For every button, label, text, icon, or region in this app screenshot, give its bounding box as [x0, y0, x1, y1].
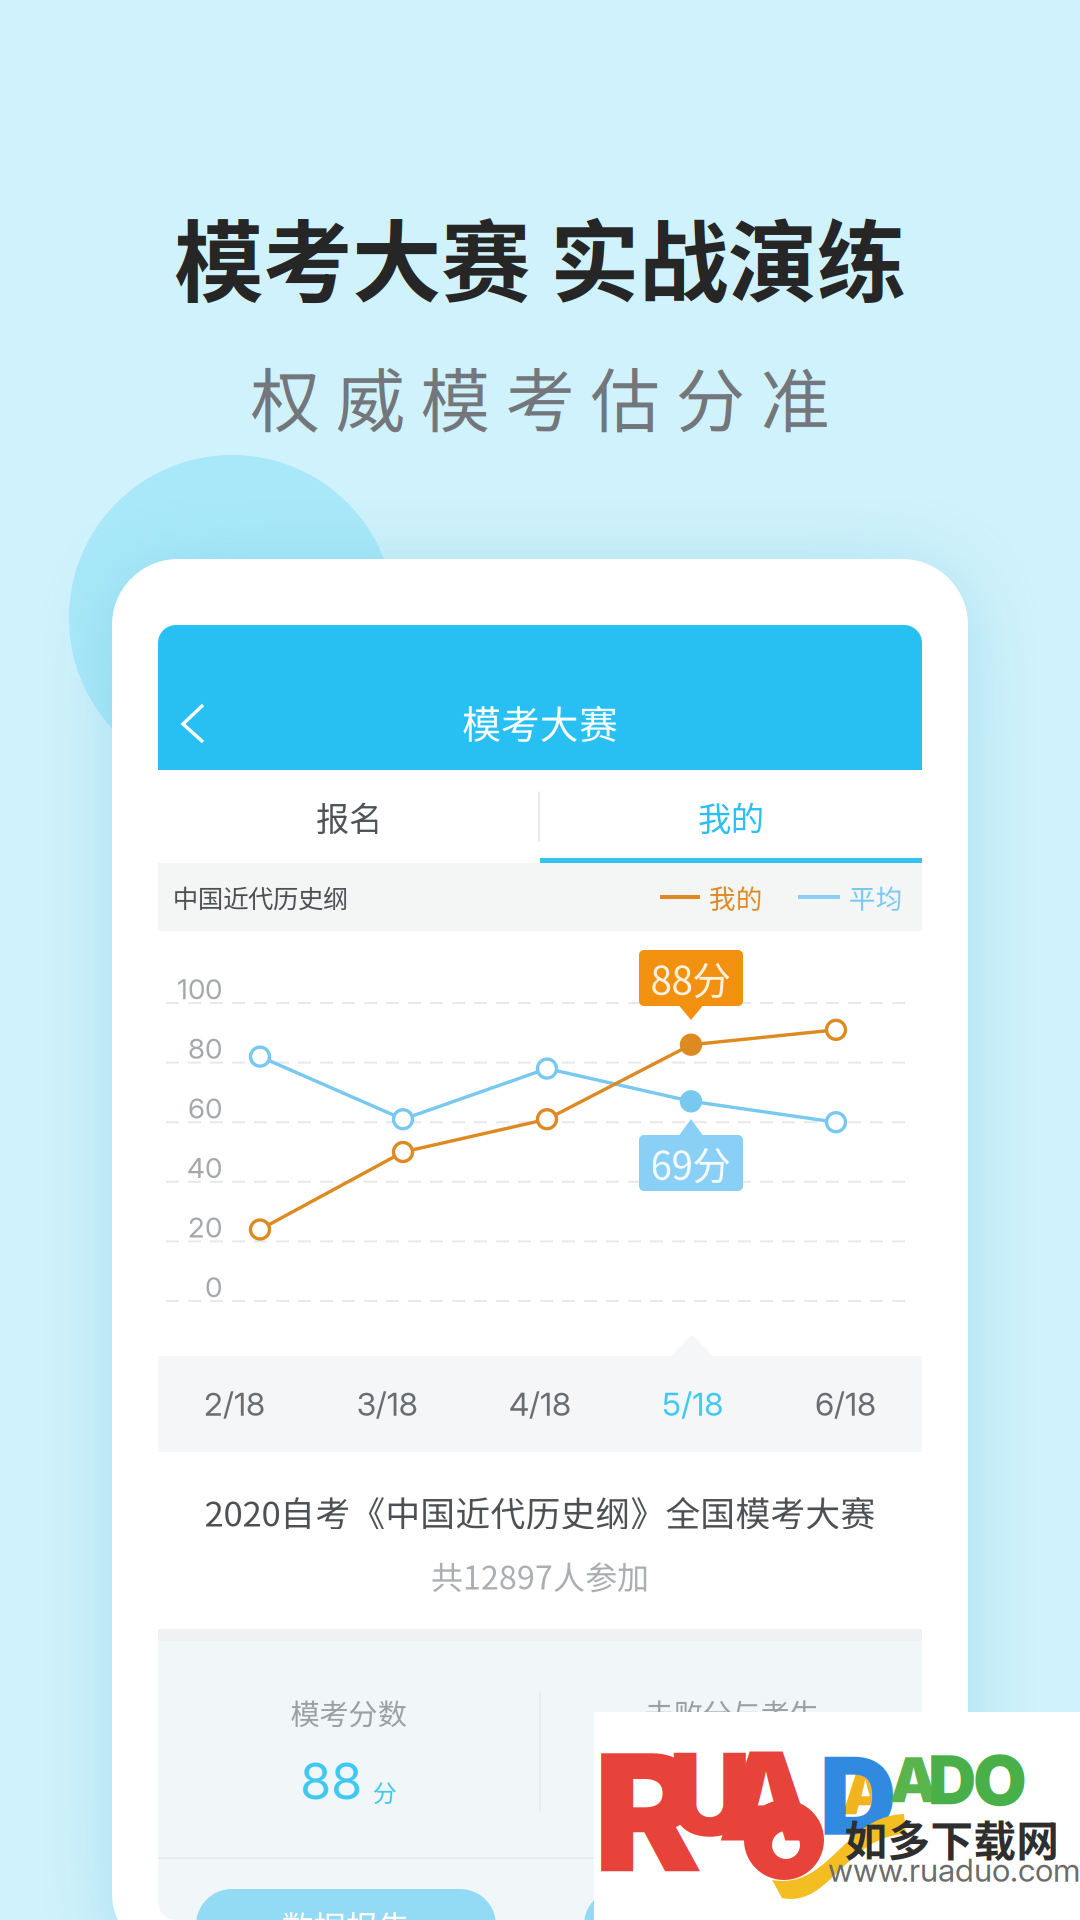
staticText: 76	[685, 1750, 744, 1812]
button[interactable]: 再测一次	[584, 1889, 884, 1920]
staticText: 数据报告	[282, 1902, 410, 1920]
staticText: www.ruaduo.com	[828, 1851, 1080, 1889]
staticText: 2/18	[204, 1385, 265, 1423]
staticText: 2020自考《中国近代历史纲》全国模考大赛	[204, 1486, 875, 1536]
staticText: 20	[188, 1210, 222, 1244]
staticText: A	[718, 1722, 816, 1870]
staticText: 88	[300, 1750, 362, 1812]
staticText: U	[668, 1725, 751, 1863]
button[interactable]: 数据报告	[196, 1889, 496, 1920]
staticText: 中国近代历史纲	[173, 879, 348, 915]
button[interactable]: 5/18	[616, 1356, 769, 1452]
staticText: A	[889, 1743, 938, 1817]
button[interactable]: 我的	[540, 770, 922, 863]
staticText: 4/18	[509, 1385, 571, 1423]
button[interactable]: 6/18	[769, 1356, 922, 1452]
staticText: 40	[187, 1151, 222, 1185]
staticText: 报名	[316, 792, 382, 841]
button[interactable]: Back	[155, 680, 231, 768]
staticText: %	[755, 1774, 777, 1809]
staticText: 权 威 模 考 估 分 准	[250, 346, 829, 446]
staticText: 3/18	[357, 1385, 418, 1423]
staticText: 如多下载网	[844, 1807, 1059, 1869]
staticText: 80	[188, 1032, 222, 1066]
staticText: 100	[177, 972, 222, 1006]
staticText: 88分	[650, 950, 731, 1006]
button[interactable]: 4/18	[464, 1356, 616, 1452]
staticText: 我的	[698, 792, 764, 841]
staticText: 6/18	[815, 1385, 876, 1423]
staticText: 模考大赛 实战演练	[174, 191, 906, 321]
staticText: 69分	[650, 1135, 731, 1191]
button[interactable]: 报名	[158, 770, 540, 863]
staticText: 我的	[709, 878, 763, 916]
staticText: 0	[205, 1270, 222, 1304]
staticText: D	[928, 1740, 976, 1820]
staticText: 平均	[849, 878, 903, 916]
staticText: 模考分数	[290, 1691, 406, 1733]
staticText: A	[841, 1755, 890, 1829]
staticText: 模考大赛	[462, 694, 618, 750]
staticText: 5/18	[662, 1385, 723, 1423]
button[interactable]: 2/18	[158, 1356, 311, 1452]
staticText: 共12897人参加	[431, 1552, 649, 1599]
staticText: 60	[188, 1091, 222, 1125]
staticText: 击败分与考生	[644, 1691, 818, 1733]
button[interactable]: 3/18	[311, 1356, 464, 1452]
staticText: O	[973, 1738, 1027, 1822]
staticText: 分	[373, 1774, 397, 1809]
staticText: D	[819, 1731, 896, 1861]
staticText: R	[593, 1714, 702, 1910]
